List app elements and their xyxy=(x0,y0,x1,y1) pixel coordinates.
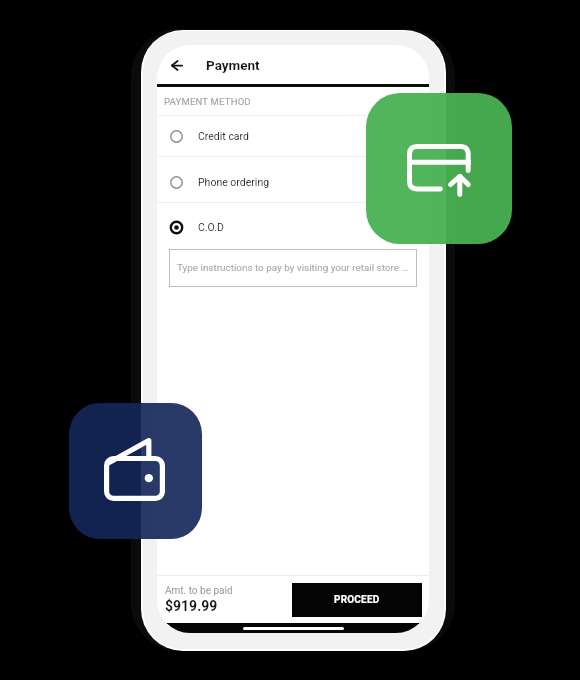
staticText: Payment xyxy=(206,57,260,73)
button[interactable]: Wallet xyxy=(69,403,202,539)
staticText: $919.99 xyxy=(165,598,218,614)
staticText: Credit card xyxy=(198,130,249,142)
button[interactable]: Phone ordering xyxy=(157,166,429,198)
button[interactable]: Type instructions to pay by visiting you… xyxy=(169,249,417,287)
button[interactable]: Credit card xyxy=(157,120,429,152)
staticText: PAYMENT METHOD xyxy=(164,96,251,107)
button[interactable]: Pay with card xyxy=(366,93,512,244)
staticText: Phone ordering xyxy=(198,176,270,188)
button[interactable]: C.O.D xyxy=(157,211,429,243)
staticText: PROCEED xyxy=(334,594,380,606)
staticText: C.O.D xyxy=(198,221,224,233)
button[interactable]: Back xyxy=(164,53,188,77)
button[interactable]: PROCEED xyxy=(292,583,422,617)
staticText: Amt. to be paid xyxy=(165,585,233,597)
staticText: Type instructions to pay by visiting you… xyxy=(177,262,408,274)
